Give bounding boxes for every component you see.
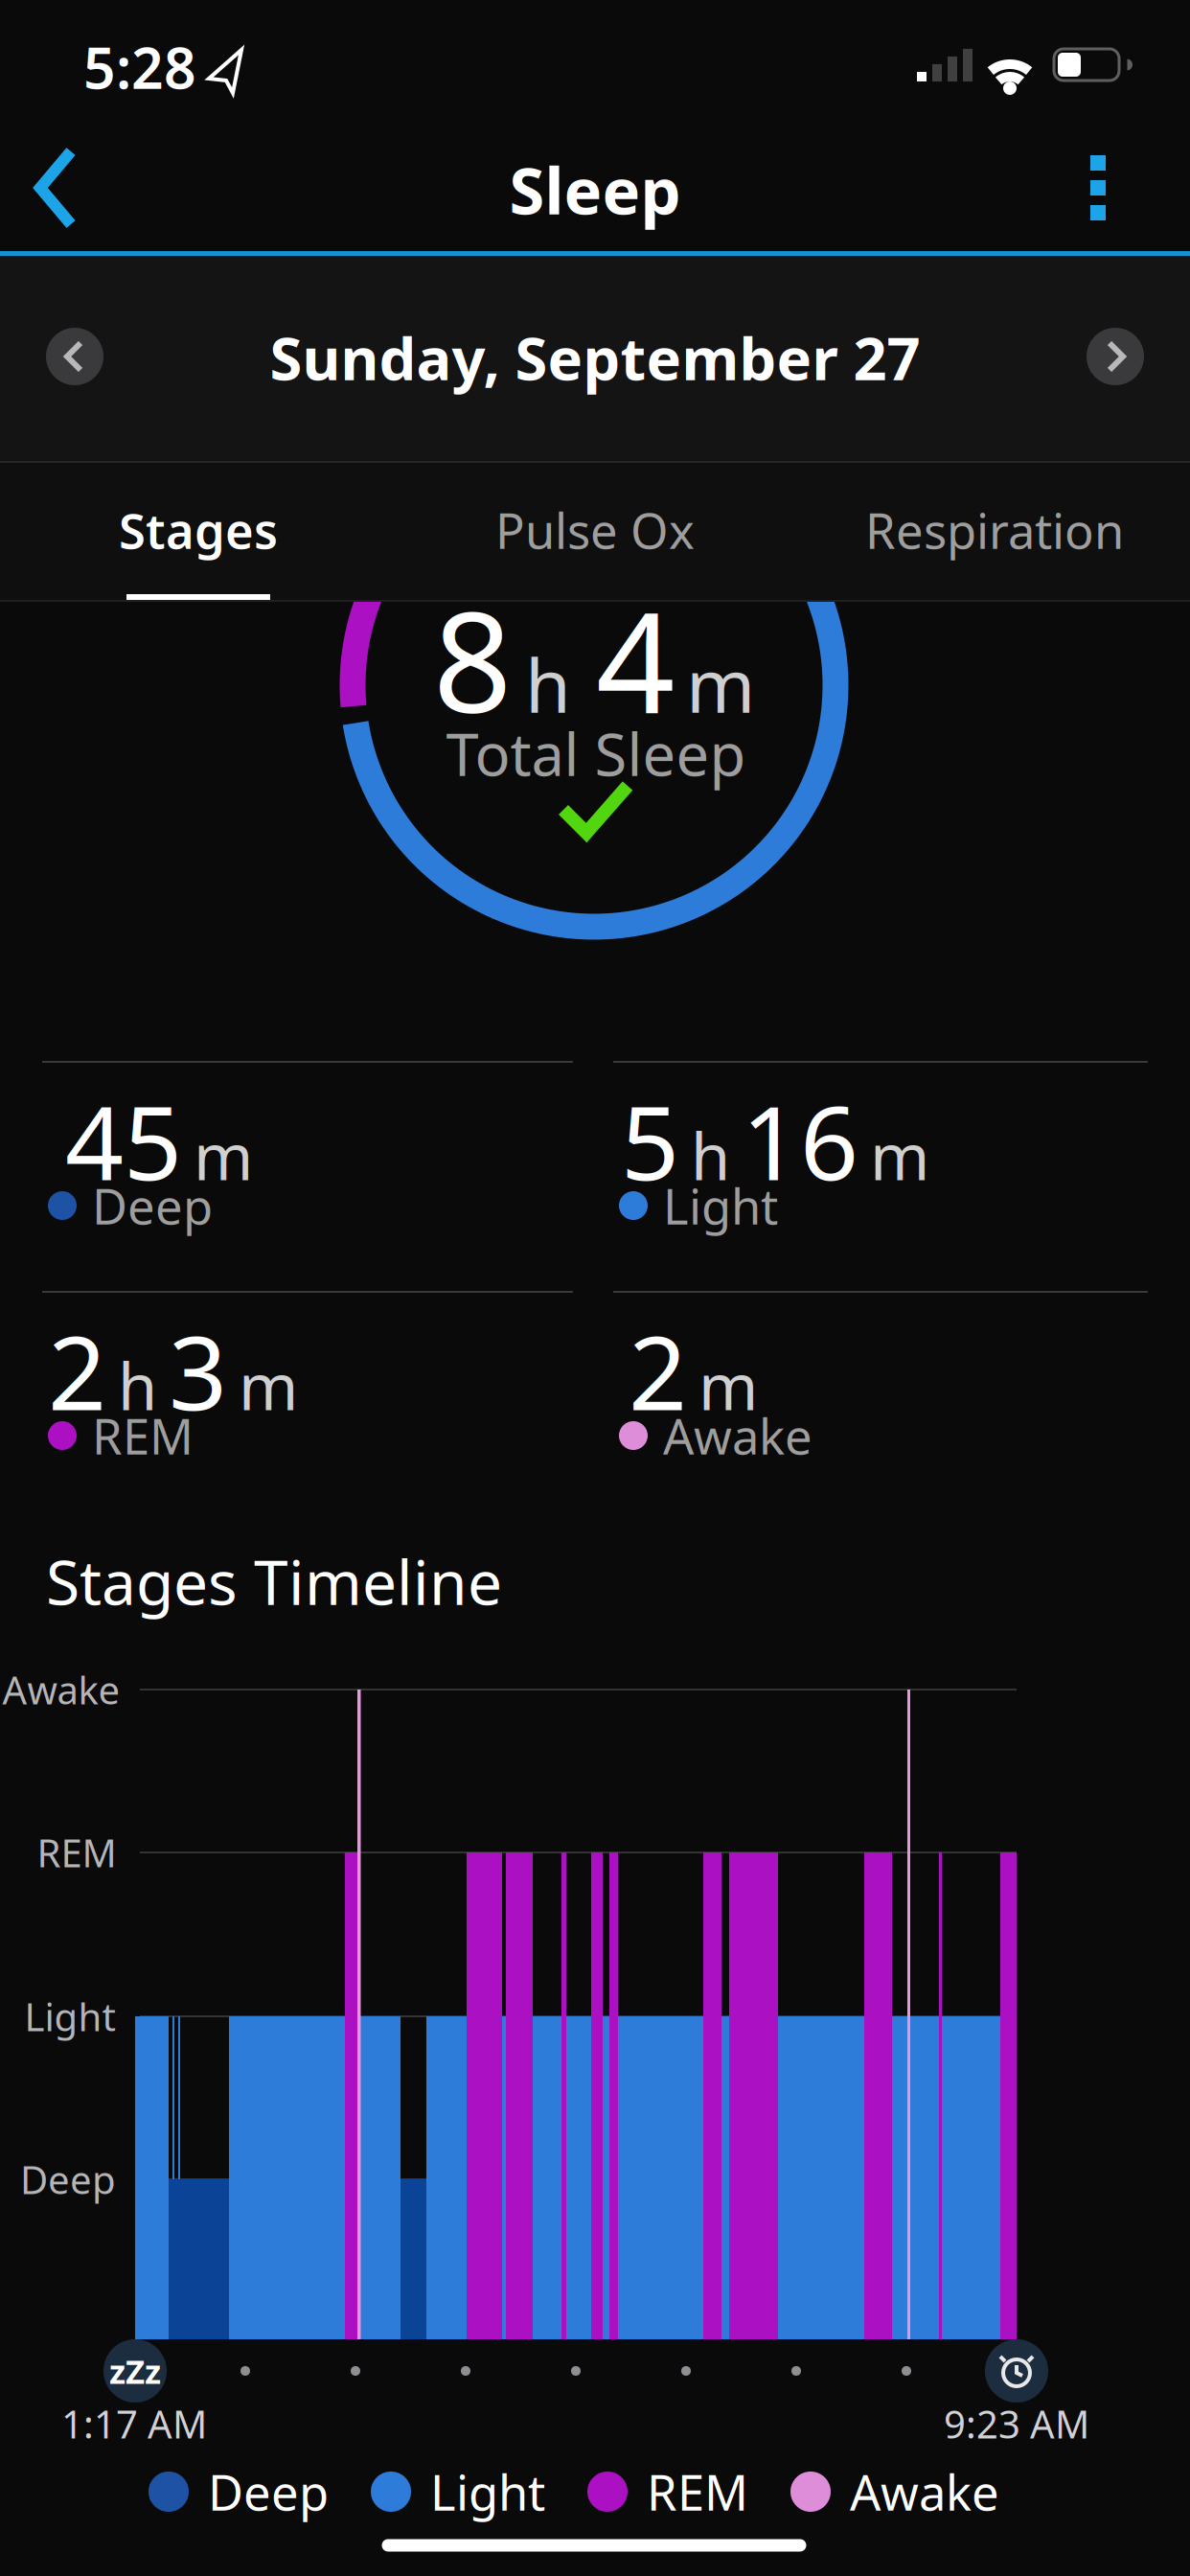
staticText: 16 <box>742 1073 858 1208</box>
staticText: Stages <box>119 498 278 562</box>
staticText: h <box>118 1343 157 1428</box>
staticText: Deep <box>208 2459 329 2524</box>
staticText: Deep <box>92 1173 213 1238</box>
staticText: REM <box>92 1403 194 1468</box>
staticText: 2 <box>48 1303 106 1438</box>
staticText: zZz <box>109 2349 161 2393</box>
staticText: REM <box>37 1827 116 1878</box>
staticText: 4 <box>596 568 675 751</box>
staticText: Light <box>430 2459 545 2524</box>
staticText: m <box>870 1113 929 1198</box>
button[interactable]: Pulse Ox <box>442 461 748 598</box>
button[interactable] <box>46 328 103 385</box>
staticText: Awake <box>2 1664 120 1715</box>
staticText: Deep <box>20 2154 116 2205</box>
staticText: REM <box>647 2459 748 2524</box>
button[interactable] <box>1052 128 1144 247</box>
staticText: Light <box>24 1991 115 2042</box>
staticText: 5:28 <box>83 30 196 104</box>
staticText: h <box>691 1113 730 1198</box>
staticText: Awake <box>850 2459 999 2524</box>
button[interactable] <box>0 125 105 251</box>
staticText: 8 <box>433 568 512 751</box>
staticText: 5 <box>621 1073 679 1208</box>
button[interactable]: Stages <box>64 461 332 598</box>
staticText: Light <box>663 1173 778 1238</box>
staticText: 3 <box>169 1303 227 1438</box>
staticText: 45 <box>65 1073 182 1208</box>
staticText: 2 <box>629 1303 687 1438</box>
staticText: 1:17 AM <box>61 2398 207 2449</box>
staticText: m <box>239 1343 298 1428</box>
staticText: Sunday, September 27 <box>270 318 920 396</box>
staticText: h <box>525 635 571 733</box>
button[interactable] <box>1087 328 1144 385</box>
staticText: m <box>686 635 755 733</box>
staticText: Respiration <box>865 498 1124 562</box>
staticText: Stages Timeline <box>46 1541 502 1622</box>
staticText: Total Sleep <box>446 714 746 792</box>
staticText: Awake <box>663 1403 812 1468</box>
staticText: 9:23 AM <box>944 2398 1089 2449</box>
button[interactable]: Respiration <box>817 461 1172 598</box>
staticText: Pulse Ox <box>495 498 695 562</box>
staticText: Sleep <box>509 147 681 232</box>
staticText: m <box>194 1113 253 1198</box>
staticText: m <box>698 1343 758 1428</box>
